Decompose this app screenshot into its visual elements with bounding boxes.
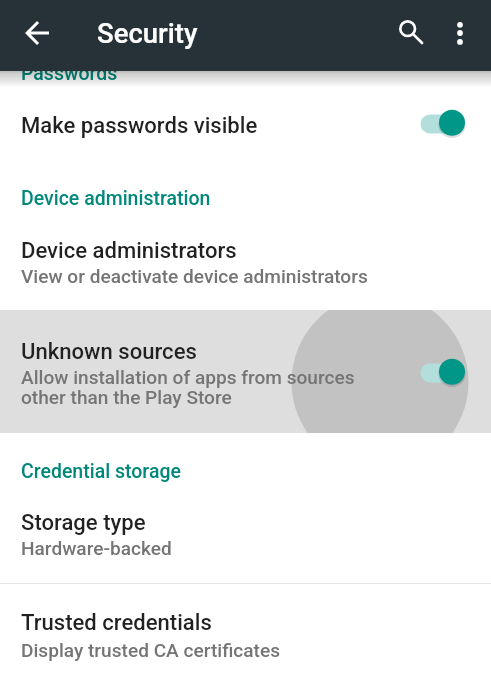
button[interactable]: Toggle [413, 103, 465, 143]
staticText: Display trusted CA certificates [21, 639, 280, 661]
staticText: Storage type [21, 509, 146, 535]
staticText: Unknown sources [21, 338, 197, 364]
button[interactable] [0, 224, 491, 296]
button[interactable] [0, 310, 491, 433]
button[interactable]: More options [436, 10, 484, 58]
staticText: Security [97, 17, 198, 49]
staticText: Device administration [21, 187, 211, 210]
button[interactable] [0, 96, 491, 154]
staticText: other than the Play Store [21, 386, 232, 408]
staticText: Allow installation of apps from sources [21, 366, 355, 388]
button[interactable] [0, 496, 491, 568]
staticText: Make passwords visible [21, 112, 258, 138]
button[interactable]: Navigate up [13, 9, 61, 57]
staticText: Credential storage [21, 460, 181, 483]
staticText: Device administrators [21, 237, 237, 263]
staticText: Passwords [21, 62, 118, 85]
button[interactable] [0, 596, 491, 676]
staticText: Trusted credentials [21, 609, 212, 635]
staticText: View or deactivate device administrators [21, 265, 368, 287]
button[interactable]: Search [387, 8, 435, 56]
staticText: Hardware-backed [21, 537, 172, 559]
button[interactable]: Toggle [413, 352, 465, 392]
